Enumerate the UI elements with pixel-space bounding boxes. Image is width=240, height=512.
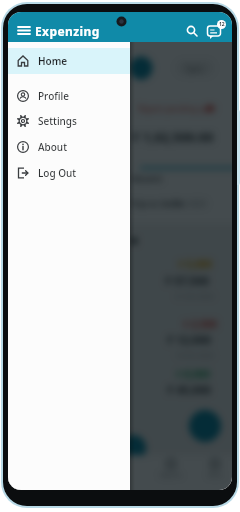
staticText: ₹ 1,02,500.00 [132,128,214,146]
staticText: ₹ 5,000 [178,257,213,271]
staticText: Profile [38,89,69,103]
button[interactable] [14,20,34,42]
staticText: 12 [219,21,225,28]
button[interactable]: More [200,459,230,479]
staticText: Oct 2023 [173,198,207,209]
staticText: ₹ 12,000 [167,332,211,347]
staticText: Home [38,54,68,68]
staticText: Log Out [38,166,77,180]
button[interactable]: 12 [204,20,226,42]
staticText: About [38,140,67,154]
staticText: Expenzing [35,23,100,39]
staticText: ₹ 8,000 [176,367,211,381]
staticText: ₹ 2,500 [183,317,218,331]
staticText: Report pending appr [138,103,217,114]
button[interactable]: About [8,137,130,157]
staticText: ₹ 45,000 [167,382,211,397]
staticText: ₹ 57,500 [165,273,209,288]
button[interactable]: Settings [8,111,130,131]
staticText: Trip to Delhi [130,197,184,209]
button[interactable]: Log Out [8,163,130,183]
staticText: Settings [38,114,77,128]
button[interactable]: Home [8,48,130,74]
button[interactable]: Profile [8,86,130,106]
button[interactable] [182,21,202,41]
